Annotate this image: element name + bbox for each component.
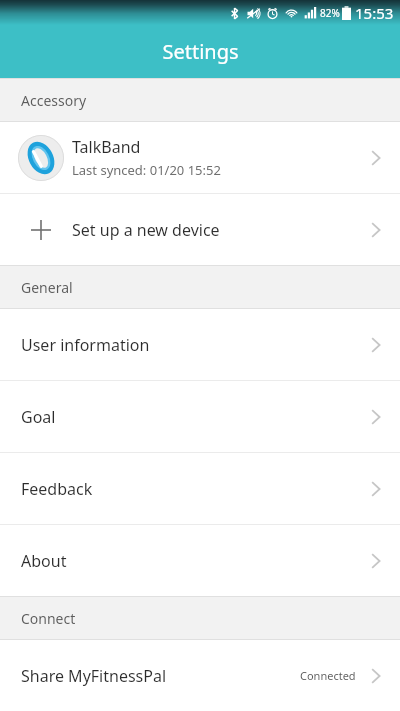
- staticText: 82%: [320, 6, 340, 20]
- staticText: Set up a new device: [72, 219, 220, 241]
- staticText: TalkBand: [72, 136, 141, 158]
- staticText: Share MyFitnessPal: [21, 665, 167, 687]
- staticText: Feedback: [21, 478, 93, 500]
- staticText: General: [21, 278, 73, 297]
- staticText: Last synced: 01/20 15:52: [72, 161, 221, 179]
- button[interactable]: TalkBand: [0, 122, 400, 193]
- staticText: About: [21, 550, 67, 572]
- staticText: Connect: [21, 609, 76, 628]
- staticText: Settings: [162, 38, 239, 65]
- button[interactable]: About: [0, 525, 400, 596]
- staticText: 15:53: [355, 3, 394, 23]
- button[interactable]: Feedback: [0, 453, 400, 524]
- staticText: Accessory: [21, 91, 87, 110]
- button[interactable]: User information: [0, 309, 400, 380]
- button[interactable]: Share MyFitnessPal: [0, 640, 400, 711]
- button[interactable]: Set up a new device: [0, 194, 400, 265]
- staticText: Connected: [300, 668, 356, 683]
- button[interactable]: Goal: [0, 381, 400, 452]
- staticText: Goal: [21, 406, 56, 428]
- staticText: User information: [21, 334, 150, 356]
